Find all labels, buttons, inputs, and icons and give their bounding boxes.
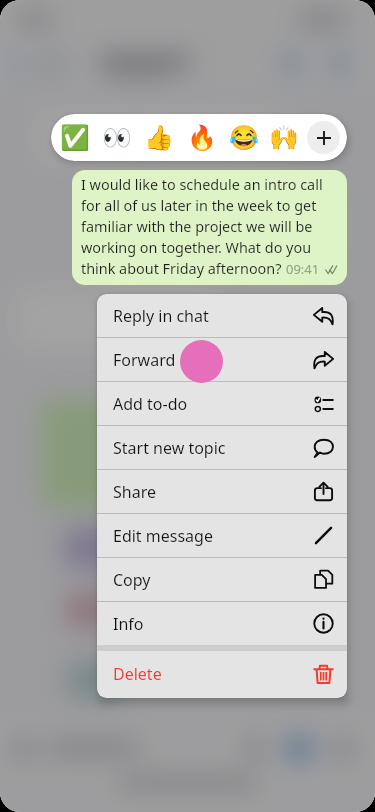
button[interactable]: More reactions — [307, 121, 340, 154]
staticText: 🙌 — [269, 124, 299, 152]
staticText: Share — [113, 481, 156, 503]
staticText: Forward — [113, 349, 176, 371]
button[interactable]: Edit message — [97, 514, 347, 557]
button[interactable]: Share — [97, 470, 347, 513]
staticText: Delete — [113, 663, 162, 685]
staticText: Reply in chat — [113, 305, 209, 327]
staticText: 👍 — [144, 124, 174, 152]
staticText: I would like to schedule an intro call f… — [81, 175, 323, 278]
staticText: 😂 — [229, 124, 259, 152]
staticText: Add to-do — [113, 393, 188, 415]
staticText: Start new topic — [113, 437, 226, 459]
button[interactable]: Delete — [97, 651, 347, 697]
staticText: Edit message — [113, 525, 213, 547]
button[interactable]: Reply in chat — [97, 294, 347, 337]
button[interactable]: ✅ — [59, 122, 91, 154]
button[interactable]: 👀 — [101, 122, 133, 154]
button[interactable]: 🔥 — [186, 122, 218, 154]
staticText: ✅ — [60, 124, 90, 152]
button[interactable]: Add to-do — [97, 382, 347, 425]
staticText: 🔥 — [187, 124, 217, 152]
button[interactable]: 👍 — [143, 122, 175, 154]
button[interactable]: 😂 — [228, 122, 260, 154]
button[interactable]: Copy — [97, 558, 347, 601]
staticText: Copy — [113, 569, 151, 591]
staticText: 09:41 — [286, 260, 320, 278]
staticText: Info — [113, 613, 144, 635]
button[interactable]: Info — [97, 602, 347, 645]
button[interactable]: 🙌 — [268, 122, 300, 154]
staticText: 👀 — [102, 124, 132, 152]
button[interactable]: Forward — [97, 338, 347, 381]
button[interactable]: Start new topic — [97, 426, 347, 469]
